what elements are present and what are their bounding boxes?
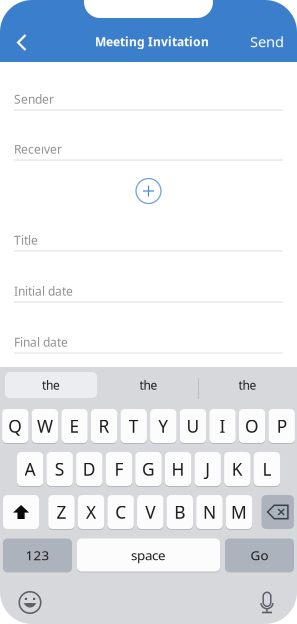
button[interactable]: C xyxy=(107,494,134,529)
button[interactable]: Dictate xyxy=(247,585,287,619)
button[interactable]: 123 xyxy=(3,538,72,572)
staticText: A xyxy=(25,457,36,480)
button[interactable]: N xyxy=(196,494,223,529)
staticText: the xyxy=(42,377,60,393)
staticText: Go xyxy=(250,546,268,564)
button[interactable]: Delete xyxy=(261,495,294,529)
staticText: S xyxy=(55,457,65,480)
staticText: W xyxy=(37,414,53,437)
staticText: Y xyxy=(158,414,168,437)
button[interactable]: M xyxy=(226,494,252,529)
staticText: Title xyxy=(14,232,38,248)
button[interactable]: Z xyxy=(48,494,75,529)
button[interactable]: Back xyxy=(0,20,44,64)
button[interactable]: H xyxy=(165,451,191,486)
staticText: J xyxy=(205,457,210,480)
button[interactable]: T xyxy=(120,408,147,443)
button[interactable]: the xyxy=(102,372,194,398)
button[interactable]: E xyxy=(61,408,88,443)
staticText: E xyxy=(69,414,79,437)
button[interactable]: U xyxy=(180,408,206,443)
staticText: O xyxy=(245,414,259,437)
staticText: H xyxy=(172,457,185,480)
staticText: D xyxy=(83,457,96,480)
staticText: R xyxy=(99,414,110,437)
staticText: the xyxy=(139,377,157,393)
button[interactable]: K xyxy=(224,451,250,486)
button[interactable]: X xyxy=(78,494,104,529)
button[interactable]: B xyxy=(167,494,193,529)
button[interactable]: Y xyxy=(150,408,176,443)
staticText: X xyxy=(86,500,96,523)
staticText: Send xyxy=(250,32,284,51)
button[interactable]: J xyxy=(194,451,221,486)
button[interactable]: F xyxy=(106,451,132,486)
staticText: N xyxy=(203,500,216,523)
button[interactable]: R xyxy=(91,408,117,443)
button[interactable]: the xyxy=(5,372,97,398)
staticText: M xyxy=(231,500,247,523)
staticText: Z xyxy=(56,500,66,523)
staticText: T xyxy=(129,414,139,437)
button[interactable]: V xyxy=(137,494,163,529)
staticText: space xyxy=(131,546,166,564)
staticText: the xyxy=(238,377,256,393)
button[interactable]: I xyxy=(209,408,236,443)
staticText: L xyxy=(262,457,271,480)
button[interactable]: Send xyxy=(241,21,293,61)
staticText: G xyxy=(142,457,155,480)
staticText: C xyxy=(115,500,126,523)
staticText: V xyxy=(145,500,155,523)
staticText: B xyxy=(174,500,185,523)
button[interactable]: Q xyxy=(2,408,28,443)
button[interactable]: O xyxy=(239,408,265,443)
button[interactable]: Shift xyxy=(3,495,39,529)
button[interactable]: A xyxy=(17,451,43,486)
button[interactable]: W xyxy=(32,408,58,443)
button[interactable]: Go xyxy=(225,538,294,572)
staticText: U xyxy=(186,414,199,437)
staticText: Initial date xyxy=(14,283,73,299)
staticText: 123 xyxy=(25,546,49,564)
button[interactable]: space xyxy=(77,538,220,572)
staticText: Final date xyxy=(14,334,68,350)
button[interactable]: L xyxy=(254,451,280,486)
button[interactable]: S xyxy=(46,451,73,486)
staticText: Meeting Invitation xyxy=(95,33,209,49)
staticText: Q xyxy=(8,414,22,437)
staticText: F xyxy=(114,457,123,480)
staticText: K xyxy=(232,457,243,480)
staticText: P xyxy=(277,414,287,437)
button[interactable]: the xyxy=(201,372,293,398)
staticText: Sender xyxy=(14,91,54,107)
button[interactable]: Add xyxy=(135,178,161,204)
staticText: I xyxy=(219,414,225,437)
button[interactable]: P xyxy=(268,408,295,443)
button[interactable]: Emoji xyxy=(10,585,50,619)
button[interactable]: D xyxy=(76,451,102,486)
staticText: Receiver xyxy=(14,141,62,157)
button[interactable]: G xyxy=(135,451,162,486)
